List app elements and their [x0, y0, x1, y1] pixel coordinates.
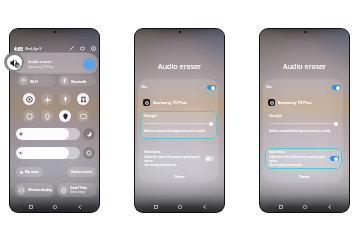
staticText: Reduce unwanted background noise in audi… — [269, 129, 331, 133]
button[interactable]: Toggle — [330, 156, 339, 161]
button[interactable]: Quick setting — [77, 110, 89, 122]
button[interactable]: Play — [83, 58, 95, 70]
button[interactable]: Back — [325, 202, 334, 211]
button[interactable]: Back — [75, 202, 84, 211]
button[interactable]: Strength — [265, 111, 342, 139]
staticText: Isolate the voice of the person speaking… — [269, 155, 328, 167]
button[interactable]: Recents — [276, 202, 285, 211]
staticText: Wi-Fi — [30, 79, 38, 83]
button[interactable]: Quick setting — [59, 110, 71, 122]
button[interactable]: Wi-Fi — [17, 75, 55, 86]
button[interactable]: Volume — [16, 147, 80, 159]
button[interactable]: Toggle — [207, 85, 216, 90]
staticText: Samsung TV Plus — [28, 65, 54, 69]
staticText: On — [266, 84, 272, 90]
button[interactable]: Home — [300, 202, 309, 211]
staticText: Reduce unwanted background noise in audi… — [144, 129, 206, 133]
button[interactable]: Quick setting — [41, 93, 53, 105]
staticText: Strength — [269, 114, 282, 118]
staticText: Bluetooth — [71, 79, 87, 83]
button[interactable]: Voice focus — [140, 148, 217, 169]
button[interactable]: More — [83, 147, 95, 159]
button[interactable]: Done — [168, 173, 191, 181]
button[interactable]: Bluetooth — [58, 75, 96, 86]
staticText: Smart View — [70, 186, 87, 190]
staticText: Voice focus — [144, 150, 161, 154]
staticText: Device control — [71, 170, 92, 174]
staticText: Voice focus — [269, 150, 286, 154]
button[interactable]: Back — [200, 202, 209, 211]
staticText: Done — [299, 174, 310, 180]
button[interactable]: Home — [50, 202, 59, 211]
button[interactable]: Voice focus — [265, 148, 342, 169]
staticText: On — [141, 84, 147, 90]
staticText: Flip more — [25, 170, 39, 174]
button[interactable]: Recents — [26, 202, 35, 211]
staticText: Samsung TV Plus — [278, 100, 312, 106]
staticText: Audio eraser — [260, 61, 349, 71]
button[interactable]: Brightness — [16, 128, 80, 140]
button[interactable]: Quick setting — [77, 93, 89, 105]
button[interactable]: Settings — [90, 45, 97, 52]
button[interactable]: Recents — [151, 202, 160, 211]
button[interactable]: Device control — [67, 167, 96, 177]
staticText: Wed, Apr 9 — [25, 47, 42, 51]
button[interactable]: Quick setting — [59, 93, 71, 105]
staticText: Audio eraser — [135, 61, 224, 71]
button[interactable]: Home — [175, 202, 184, 211]
button[interactable]: Toggle — [205, 156, 214, 161]
staticText: Wireless display — [28, 188, 52, 192]
button[interactable]: Strength — [140, 111, 217, 139]
button[interactable]: Flip more — [16, 167, 43, 177]
staticText: Not in range — [70, 190, 86, 194]
button[interactable]: Quick setting — [23, 93, 35, 105]
button[interactable]: Toggle — [332, 85, 341, 90]
button[interactable]: Audio eraser — [13, 53, 98, 74]
button[interactable]: Smart View — [57, 183, 96, 197]
staticText: 4:05 — [14, 46, 24, 52]
button[interactable]: Wireless display — [15, 183, 54, 197]
button[interactable]: More — [83, 128, 95, 140]
button[interactable]: Done — [293, 173, 316, 181]
staticText: Isolate the voice of the person speaking… — [144, 155, 203, 167]
staticText: Audio eraser — [28, 59, 52, 64]
button[interactable]: Quick setting — [23, 110, 35, 122]
button[interactable]: Power off — [79, 45, 86, 52]
button[interactable]: Edit — [68, 45, 75, 52]
button[interactable]: Quick setting — [41, 110, 53, 122]
staticText: Strength — [144, 114, 157, 118]
staticText: Samsung TV Plus — [153, 100, 187, 106]
staticText: Done — [174, 174, 185, 180]
